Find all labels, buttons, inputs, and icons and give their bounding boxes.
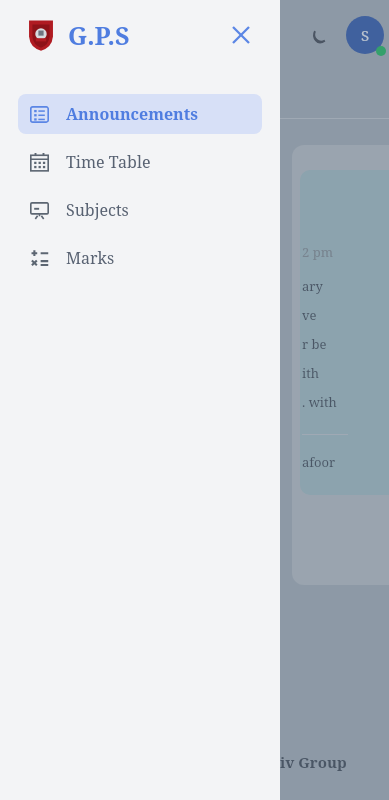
staticText: ith (302, 364, 319, 382)
button[interactable]: Toggle dark mode (304, 21, 334, 51)
staticText: Marks (66, 247, 115, 269)
staticText: iv Group (280, 752, 347, 772)
button[interactable]: Close navigation drawer (224, 18, 258, 52)
staticText: ary (302, 277, 323, 295)
staticText: Subjects (66, 199, 129, 221)
staticText: S (361, 25, 370, 45)
staticText: Announcements (66, 103, 198, 125)
staticText: ve (302, 306, 317, 324)
button[interactable]: Announcements (18, 94, 262, 134)
button[interactable]: Profile (346, 16, 386, 56)
button[interactable]: Marks (18, 238, 262, 278)
staticText: r be (302, 335, 327, 353)
staticText: . with (302, 393, 337, 411)
button[interactable]: Time Table (18, 142, 262, 182)
button[interactable]: Subjects (18, 190, 262, 230)
staticText: Time Table (66, 151, 151, 173)
staticText: afoor (302, 453, 336, 471)
staticText: 2 pm (302, 243, 333, 261)
staticText: G.P.S (68, 18, 130, 52)
